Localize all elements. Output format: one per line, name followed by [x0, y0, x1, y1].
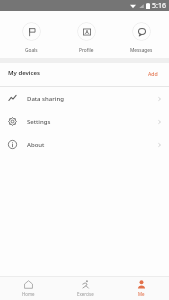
staticText: Settings — [27, 118, 51, 126]
staticText: Profile — [79, 47, 94, 54]
button[interactable]: Settings — [0, 110, 169, 133]
staticText: Exercise — [77, 291, 94, 297]
staticText: About — [27, 141, 45, 149]
staticText: Home — [22, 291, 35, 297]
button[interactable]: Exercise — [57, 277, 113, 300]
staticText: Messages — [130, 47, 153, 54]
staticText: Add — [148, 70, 158, 77]
staticText: Me — [138, 291, 145, 297]
staticText: Data sharing — [27, 95, 64, 103]
button[interactable]: Add — [148, 70, 158, 77]
button[interactable]: Messages — [114, 11, 169, 58]
staticText: My devices — [8, 69, 41, 77]
button[interactable]: Me — [113, 277, 169, 300]
button[interactable]: Goals — [3, 11, 59, 58]
button[interactable]: Home — [0, 277, 57, 300]
staticText: 5:16 — [152, 1, 166, 11]
staticText: Goals — [25, 47, 38, 54]
button[interactable]: About — [0, 133, 169, 156]
button[interactable]: Data sharing — [0, 87, 169, 110]
button[interactable]: Profile — [59, 11, 114, 58]
